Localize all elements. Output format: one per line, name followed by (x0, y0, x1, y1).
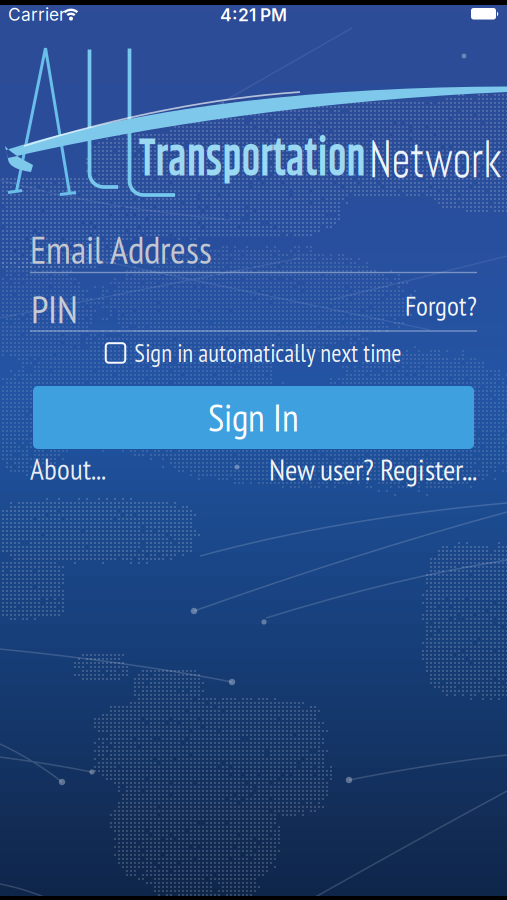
staticText: Sign in automatically next time (134, 337, 401, 369)
staticText: New user? Register... (269, 450, 477, 489)
staticText: 4:21 PM (220, 4, 287, 25)
button[interactable]: Sign In (33, 386, 474, 449)
button[interactable]: Sign in automatically next time (106, 337, 401, 369)
button[interactable]: New user? Register... (269, 450, 477, 489)
staticText: Transportation (139, 118, 433, 202)
staticText: Forgot? (405, 288, 477, 323)
staticText: Network (369, 125, 507, 193)
button[interactable]: About... (30, 450, 106, 488)
button[interactable]: Forgot? (405, 288, 477, 323)
staticText: Email Address (30, 225, 212, 274)
staticText: About... (30, 450, 106, 488)
staticText: PIN (31, 284, 78, 334)
staticText: Sign In (208, 393, 299, 442)
staticText: Carrier (8, 4, 66, 25)
